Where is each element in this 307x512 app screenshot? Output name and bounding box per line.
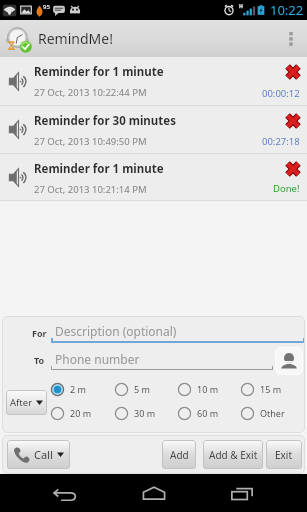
staticText: Reminder for 1 minute	[34, 161, 164, 177]
button[interactable]: Exit	[266, 440, 302, 469]
staticText: Exit	[275, 448, 293, 462]
staticText: Description (optional)	[55, 323, 177, 339]
staticText: Reminder for 1 minute	[34, 64, 164, 80]
staticText: Reminder for 30 minutes	[34, 113, 176, 129]
staticText: 30 m	[134, 407, 156, 419]
button[interactable]: Reminder for 1 minute	[0, 154, 307, 200]
staticText: Other	[260, 407, 285, 419]
button[interactable]: 2 m	[50, 380, 86, 398]
staticText: RemindMe!	[38, 29, 113, 48]
staticText: For	[32, 327, 47, 339]
button[interactable]: Call	[7, 440, 70, 469]
button[interactable]: Delete reminder	[285, 161, 301, 177]
staticText: 95	[43, 3, 50, 11]
staticText: 20 m	[70, 407, 92, 419]
staticText: 27 Oct, 2013 10:22:44 PM	[34, 86, 147, 99]
staticText: 60 m	[197, 407, 219, 419]
staticText: 00:00:12	[262, 87, 300, 100]
staticText: 27 Oct, 2013 10:21:14 PM	[34, 183, 147, 196]
staticText: Add & Exit	[209, 448, 258, 462]
staticText: 10:22	[270, 1, 304, 19]
staticText: Call	[34, 447, 53, 462]
button[interactable]: Back	[41, 474, 89, 512]
staticText: 10 m	[197, 383, 219, 395]
staticText: 2 m	[70, 383, 86, 395]
button[interactable]: More options	[278, 20, 304, 57]
staticText: After	[10, 396, 33, 409]
button[interactable]: Pick contact	[275, 347, 303, 375]
button[interactable]: 30 m	[114, 404, 156, 422]
staticText: 5 m	[134, 383, 150, 395]
button[interactable]: Reminder for 30 minutes	[0, 106, 307, 153]
button[interactable]: 5 m	[114, 380, 150, 398]
button[interactable]: Reminder for 1 minute	[0, 57, 307, 105]
button[interactable]: Delete reminder	[285, 64, 301, 80]
staticText: 15 m	[260, 383, 282, 395]
button[interactable]: 10 m	[177, 380, 219, 398]
staticText: 00:27:18	[262, 135, 300, 148]
button[interactable]: 60 m	[177, 404, 219, 422]
staticText: Phone number	[55, 351, 140, 367]
button[interactable]: Delete reminder	[285, 113, 301, 129]
button[interactable]: Add	[162, 440, 196, 469]
staticText: To	[34, 354, 45, 366]
button[interactable]: 20 m	[50, 404, 92, 422]
button[interactable]: Recent apps	[218, 474, 266, 512]
staticText: Done!	[273, 182, 300, 195]
button[interactable]: Add & Exit	[203, 440, 263, 469]
button[interactable]: Other	[240, 404, 285, 422]
staticText: 27 Oct, 2013 10:49:50 PM	[34, 135, 147, 148]
staticText: Add	[170, 448, 189, 462]
button[interactable]: Home	[130, 474, 178, 512]
button[interactable]: After	[6, 390, 47, 415]
button[interactable]: 15 m	[240, 380, 282, 398]
